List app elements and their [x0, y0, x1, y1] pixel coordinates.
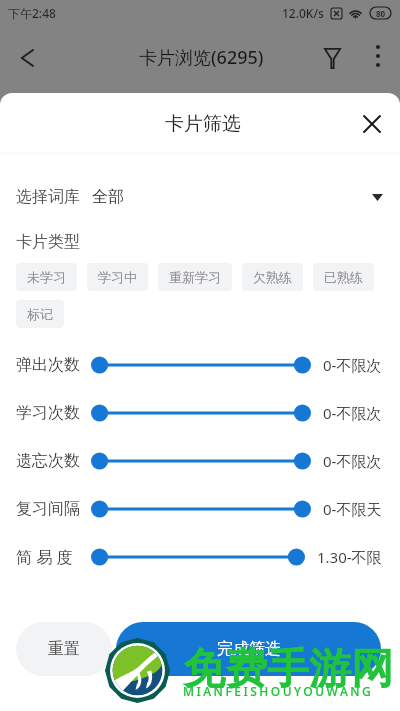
staticText: 0-不限次 — [323, 451, 382, 471]
button[interactable]: 标记 — [16, 300, 64, 328]
button[interactable]: 学习中 — [87, 263, 148, 291]
staticText: 复习间隔 — [16, 499, 80, 519]
button[interactable]: 欠熟练 — [242, 263, 303, 291]
staticText: 卡片浏览(6295) — [139, 45, 264, 70]
staticText: 0-不限天 — [323, 499, 382, 519]
staticText: 遗忘次数 — [16, 451, 80, 471]
staticText: 12.0K/s — [282, 5, 324, 21]
staticText: MIANFEISHOUYOUWANG — [183, 683, 374, 699]
button[interactable]: 完成筛选 — [116, 622, 381, 676]
staticText: 80 — [376, 8, 386, 19]
staticText: 欠熟练 — [253, 269, 292, 285]
button[interactable]: 已熟练 — [313, 263, 374, 291]
staticText: 卡片筛选 — [165, 112, 241, 136]
staticText: 简 易 度 — [16, 546, 73, 568]
staticText: 0-不限次 — [323, 403, 382, 423]
staticText: 卡片类型 — [16, 232, 80, 252]
staticText: 全部 — [92, 187, 124, 207]
staticText: 免费手游网 — [183, 643, 393, 696]
button[interactable]: 选择词库 — [0, 174, 400, 220]
staticText: 学习次数 — [16, 403, 80, 423]
staticText: 未学习 — [27, 269, 66, 285]
button[interactable]: More options — [356, 34, 400, 78]
button[interactable]: Filter — [308, 34, 356, 82]
staticText: 0-不限次 — [323, 355, 382, 375]
button[interactable]: 重新学习 — [158, 263, 232, 291]
staticText: 下午2:48 — [8, 5, 56, 21]
staticText: 重置 — [48, 639, 80, 659]
staticText: 弹出次数 — [16, 355, 80, 375]
button[interactable]: Back — [0, 31, 54, 85]
staticText: 选择词库 — [16, 187, 80, 207]
button[interactable]: 未学习 — [16, 263, 77, 291]
staticText: 重新学习 — [169, 269, 221, 285]
button[interactable]: 重置 — [16, 622, 112, 676]
staticText: 已熟练 — [324, 269, 363, 285]
staticText: 1.30-不限 — [317, 547, 382, 567]
staticText: 学习中 — [98, 269, 137, 285]
staticText: 完成筛选 — [217, 639, 281, 659]
button[interactable]: Close — [344, 96, 400, 152]
staticText: 标记 — [27, 306, 53, 322]
